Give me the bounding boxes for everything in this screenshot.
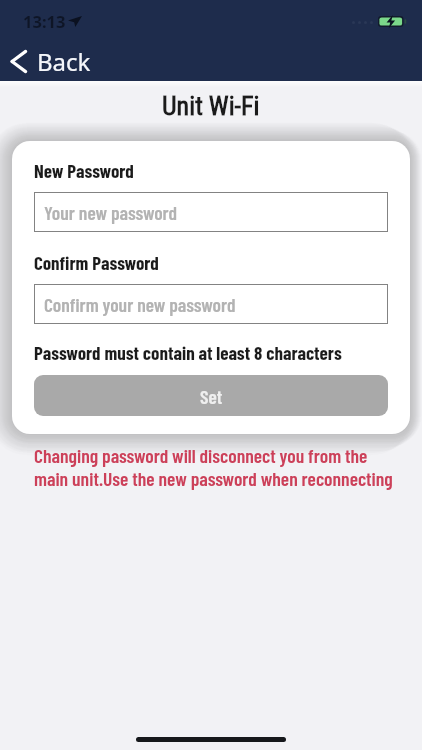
other: Location [68, 16, 82, 27]
button[interactable]: Your new password [34, 192, 388, 232]
staticText: Confirm Password [34, 251, 159, 274]
staticText: Password must contain at least 8 charact… [34, 341, 342, 364]
other: Back [10, 50, 27, 73]
button[interactable]: Set [34, 375, 388, 416]
staticText: Back [37, 45, 91, 78]
staticText: Changing password will disconnect you fr… [34, 443, 368, 466]
button[interactable]: Back [0, 40, 112, 83]
staticText: main unit.Use the new password when reco… [34, 466, 393, 489]
staticText: Your new password [44, 200, 178, 223]
staticText: Confirm your new password [44, 292, 236, 315]
button[interactable]: Confirm your new password [34, 284, 388, 324]
staticText: Set [200, 384, 223, 407]
staticText: 13:13 [23, 10, 66, 32]
staticText: Unit Wi-Fi [162, 91, 260, 117]
staticText: New Password [34, 159, 134, 182]
